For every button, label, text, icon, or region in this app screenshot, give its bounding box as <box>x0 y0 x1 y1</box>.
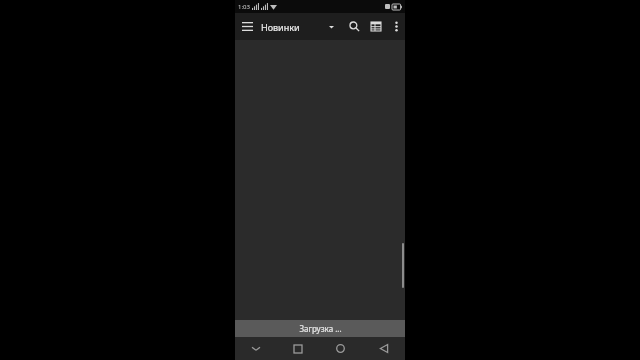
button[interactable]: Change view layout <box>365 13 387 40</box>
button[interactable]: Recent apps <box>277 337 319 360</box>
button[interactable]: More options <box>387 13 405 40</box>
button[interactable]: Open navigation drawer <box>235 13 259 40</box>
button[interactable]: Hide keyboard <box>235 337 277 360</box>
staticText: Новинки <box>261 21 300 33</box>
button[interactable]: Загрузка ... <box>235 320 405 337</box>
button[interactable]: Change category <box>323 13 339 40</box>
button[interactable]: Back <box>362 337 405 360</box>
staticText: Загрузка ... <box>299 323 342 334</box>
button[interactable]: Search <box>343 13 365 40</box>
button[interactable]: Home <box>319 337 362 360</box>
staticText: 1:03 <box>238 3 250 11</box>
